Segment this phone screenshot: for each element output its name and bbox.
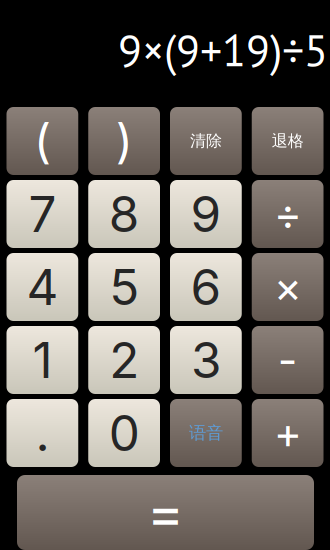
button[interactable]: ÷ bbox=[252, 180, 324, 248]
button[interactable]: 6 bbox=[170, 253, 242, 321]
staticText: + bbox=[274, 407, 302, 459]
button[interactable]: 0 bbox=[88, 399, 160, 467]
button[interactable]: - bbox=[252, 326, 324, 394]
button[interactable]: . bbox=[6, 399, 78, 467]
staticText: - bbox=[278, 334, 298, 386]
button[interactable]: 清除 bbox=[170, 107, 242, 175]
staticText: 2 bbox=[109, 330, 139, 390]
staticText: ÷ bbox=[274, 188, 302, 240]
button[interactable]: = bbox=[17, 475, 314, 550]
staticText: 语音 bbox=[189, 422, 223, 444]
button[interactable]: 7 bbox=[6, 180, 78, 248]
staticText: 8 bbox=[109, 184, 140, 244]
staticText: × bbox=[274, 261, 302, 313]
button[interactable]: 3 bbox=[170, 326, 242, 394]
button[interactable]: 退格 bbox=[252, 107, 324, 175]
button[interactable]: 9 bbox=[170, 180, 242, 248]
button[interactable]: 8 bbox=[88, 180, 160, 248]
button[interactable]: 2 bbox=[88, 326, 160, 394]
staticText: 9 bbox=[190, 184, 221, 244]
staticText: ) bbox=[116, 113, 133, 169]
staticText: 清除 bbox=[190, 131, 222, 151]
staticText: . bbox=[35, 403, 49, 463]
button[interactable]: 语音 bbox=[170, 399, 242, 467]
staticText: 3 bbox=[191, 330, 221, 390]
button[interactable]: 5 bbox=[88, 253, 160, 321]
staticText: ( bbox=[34, 113, 51, 169]
staticText: = bbox=[147, 479, 184, 546]
staticText: 0 bbox=[109, 403, 140, 463]
button[interactable]: × bbox=[252, 253, 324, 321]
staticText: 7 bbox=[28, 184, 56, 244]
staticText: 1 bbox=[32, 330, 52, 390]
staticText: 4 bbox=[26, 257, 58, 317]
button[interactable]: 4 bbox=[6, 253, 78, 321]
staticText: 退格 bbox=[272, 131, 304, 151]
staticText: 5 bbox=[109, 257, 139, 317]
button[interactable]: 1 bbox=[6, 326, 78, 394]
button[interactable]: ) bbox=[88, 107, 160, 175]
staticText: 9×(9+19)÷5 bbox=[118, 21, 328, 78]
button[interactable]: + bbox=[252, 399, 324, 467]
button[interactable]: ( bbox=[6, 107, 78, 175]
staticText: 6 bbox=[190, 257, 221, 317]
